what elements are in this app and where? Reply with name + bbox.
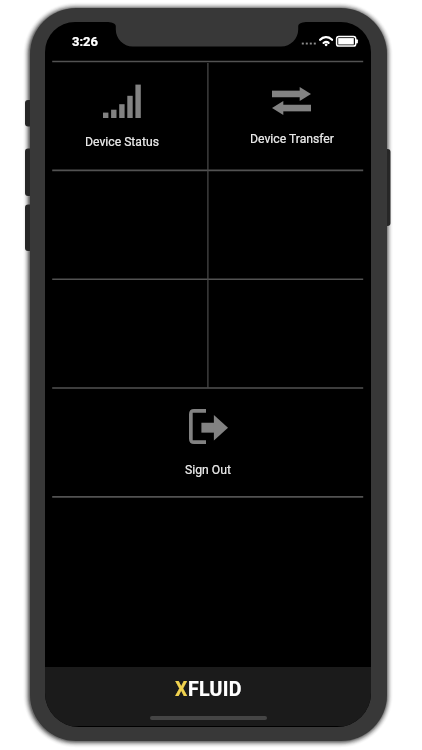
button[interactable]: Sign out (45, 388, 371, 497)
staticText: X (175, 678, 188, 701)
button[interactable]: Transfer (208, 62, 371, 171)
staticText: Device Transfer (250, 132, 334, 146)
other: Sign out (189, 409, 228, 444)
staticText: 3:26 (72, 34, 99, 49)
staticText: Device Status (85, 135, 159, 149)
other: Transfer (272, 87, 311, 115)
staticText: FLUID (188, 678, 242, 701)
staticText: Sign Out (185, 463, 231, 477)
other: Signal strength (103, 85, 141, 118)
button[interactable]: Signal strength (45, 62, 208, 171)
